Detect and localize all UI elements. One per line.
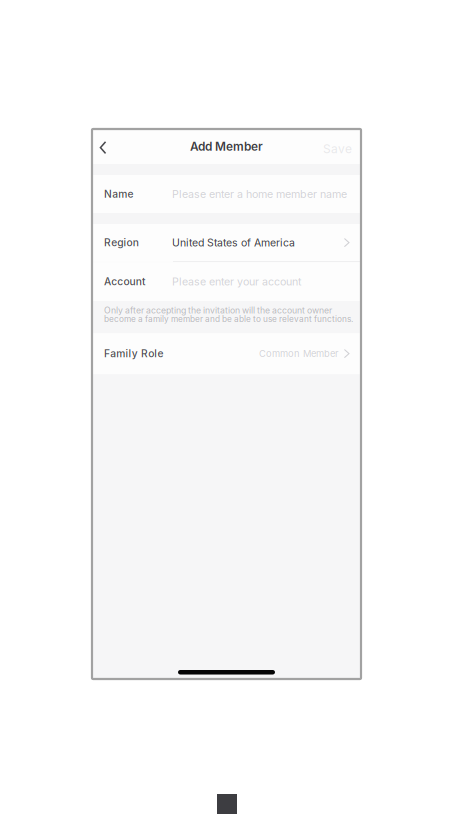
staticText: Save (323, 142, 352, 156)
staticText: Name (104, 188, 133, 200)
staticText: Add Member (190, 139, 263, 154)
staticText: become a family member and be able to us… (104, 314, 353, 324)
button[interactable]: Name (92, 175, 361, 213)
staticText: Account (104, 275, 145, 288)
button[interactable]: Family Role (92, 333, 361, 374)
staticText: Only after accepting the invitation will… (104, 305, 332, 316)
staticText: Common Member (259, 348, 339, 359)
button[interactable]: Back (92, 129, 114, 164)
button[interactable]: Region (92, 224, 361, 261)
button[interactable]: Save (323, 129, 361, 164)
staticText: Please enter a home member name (172, 187, 347, 200)
button[interactable]: Account (92, 262, 361, 301)
staticText: United States of America (172, 236, 295, 249)
staticText: Region (104, 236, 139, 249)
staticText: Family Role (104, 347, 163, 360)
staticText: Please enter your account (172, 275, 301, 288)
